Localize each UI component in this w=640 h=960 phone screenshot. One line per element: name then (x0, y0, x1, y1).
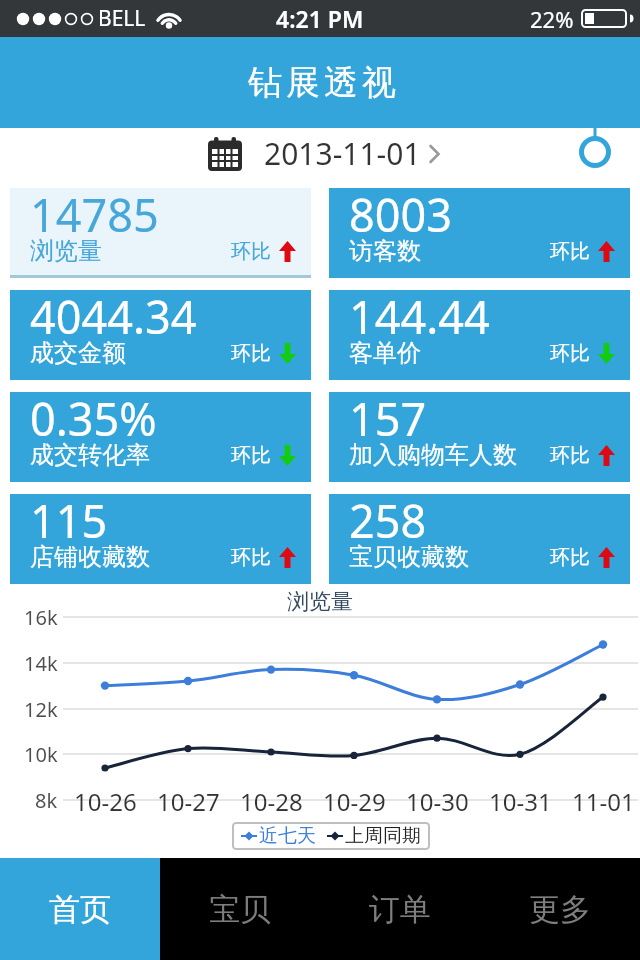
staticText: 钻展透视 (246, 61, 398, 104)
button[interactable]: 8003 (329, 188, 630, 278)
button[interactable]: 首页 (0, 858, 160, 960)
staticText: 0.35% (30, 388, 157, 449)
staticText: 客单价 (349, 338, 421, 368)
staticText: 10-30 (406, 785, 469, 818)
button[interactable]: 157 (329, 392, 630, 482)
staticText: 成交转化率 (30, 440, 150, 470)
staticText: 浏览量 (287, 588, 353, 616)
staticText: 首页 (49, 890, 111, 929)
staticText: 宝贝收藏数 (349, 542, 469, 572)
staticText: 14785 (30, 184, 159, 245)
staticText: 115 (30, 490, 108, 551)
staticText: 10-28 (240, 785, 303, 818)
staticText: BELL (98, 4, 146, 33)
staticText: 近七天 (259, 824, 316, 848)
staticText: 环比 (231, 341, 271, 366)
button[interactable]: 2013-11-01 (208, 133, 441, 174)
staticText: 14k (24, 650, 58, 677)
staticText: 4044.34 (30, 286, 197, 347)
staticText: 10-27 (157, 785, 220, 818)
staticText: 浏览量 (30, 236, 102, 266)
staticText: 12k (24, 696, 58, 723)
button[interactable]: 更多 (480, 858, 640, 960)
button[interactable]: 4044.34 (10, 290, 311, 380)
staticText: 订单 (369, 890, 431, 929)
staticText: 8k (35, 787, 58, 814)
staticText: 157 (349, 388, 427, 449)
staticText: 8003 (349, 184, 452, 245)
staticText: 上周同期 (345, 824, 421, 848)
button[interactable]: 0.35% (10, 392, 311, 482)
staticText: 成交金额 (30, 338, 126, 368)
staticText: 10k (24, 741, 58, 768)
button[interactable]: 14785 (10, 188, 311, 278)
button[interactable]: 宝贝 (160, 858, 320, 960)
staticText: 10-26 (74, 785, 137, 818)
button[interactable]: 115 (10, 494, 311, 584)
staticText: 加入购物车人数 (349, 440, 517, 470)
staticText: 环比 (550, 341, 590, 366)
staticText: 环比 (550, 545, 590, 570)
staticText: 访客数 (349, 236, 421, 266)
staticText: 店铺收藏数 (30, 542, 150, 572)
staticText: 环比 (550, 443, 590, 468)
staticText: 宝贝 (209, 890, 271, 929)
staticText: 2013-11-01 (264, 133, 421, 174)
button[interactable]: 258 (329, 494, 630, 584)
button[interactable]: 订单 (320, 858, 480, 960)
staticText: 10-29 (323, 785, 386, 818)
staticText: 10-31 (489, 785, 552, 818)
staticText: 258 (349, 490, 427, 551)
button[interactable]: 144.44 (329, 290, 630, 380)
staticText: 22% (530, 4, 574, 34)
staticText: 4:21 PM (276, 3, 364, 34)
staticText: 144.44 (349, 286, 490, 347)
staticText: 16k (24, 604, 58, 631)
staticText: 环比 (550, 239, 590, 264)
staticText: 11-01 (572, 785, 635, 818)
staticText: 更多 (529, 890, 591, 929)
staticText: 环比 (231, 443, 271, 468)
staticText: 环比 (231, 545, 271, 570)
staticText: 环比 (231, 239, 271, 264)
